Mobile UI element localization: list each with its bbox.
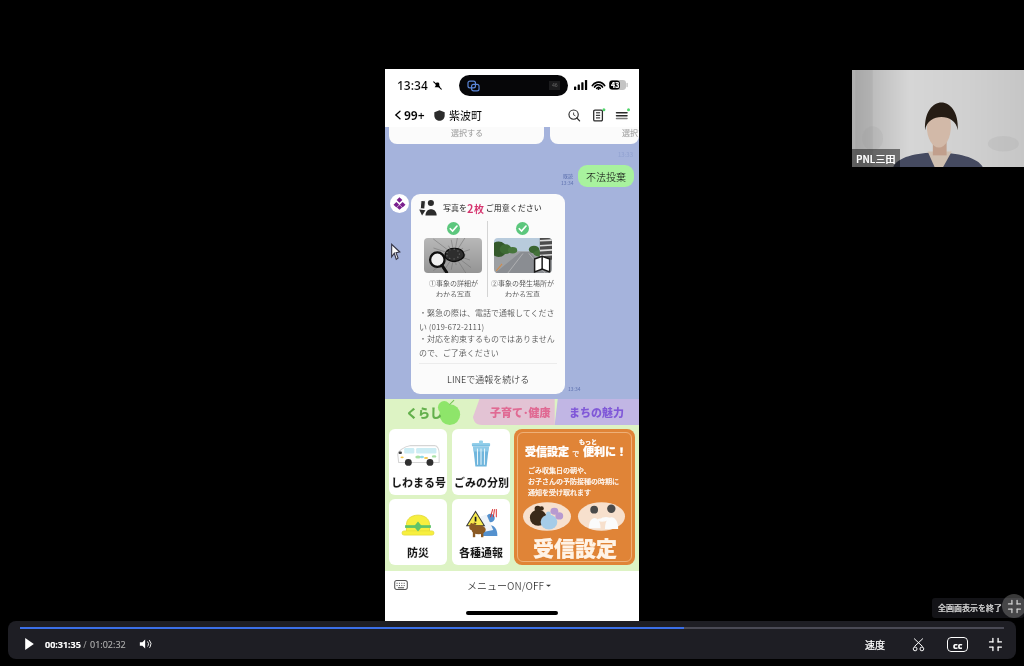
staticText: ごみの分別 <box>454 474 509 490</box>
button[interactable]: 防災 <box>389 499 447 565</box>
staticText: 既読 <box>563 172 574 179</box>
staticText: 46 <box>552 82 558 89</box>
staticText: 写真を <box>443 202 467 214</box>
staticText: 便利に！ <box>583 443 627 459</box>
staticText: 速度 <box>865 637 885 651</box>
staticText: まちの魅力 <box>569 404 624 420</box>
staticText: ・緊急の際は、電話で通報してください (019-672-2111) <box>419 307 557 333</box>
button[interactable]: Captions <box>947 637 968 652</box>
staticText: で <box>569 448 583 458</box>
staticText: 不法投棄 <box>586 169 626 183</box>
staticText: 13:34 <box>568 385 581 392</box>
button[interactable]: Back <box>393 107 425 123</box>
staticText: 99+ <box>404 107 425 123</box>
button[interactable]: ごみの分別 <box>452 429 510 495</box>
button[interactable]: 受信設定 <box>514 429 635 565</box>
staticText: 00:31:35 <box>45 638 81 650</box>
button[interactable]: Volume <box>137 635 155 653</box>
staticText: 各種通報 <box>459 544 503 560</box>
button[interactable]: 選択する <box>389 127 544 144</box>
staticText: 選択する <box>451 127 483 139</box>
button[interactable]: メニューON/OFF <box>467 578 551 592</box>
button[interactable]: Play <box>20 635 38 653</box>
button[interactable]: Notes <box>591 108 606 123</box>
staticText: 紫波町 <box>449 107 482 123</box>
staticText: cc <box>953 639 963 651</box>
staticText: メニューON/OFF <box>467 578 544 592</box>
staticText: ・対応を約束するものではありませんので、ご了承ください <box>419 333 557 359</box>
button[interactable]: 不法投棄 <box>578 165 634 187</box>
staticText: 選択する <box>622 127 639 139</box>
staticText: ごみ収集日の朝や、 お子さんの予防接種の時期に 通知を受け取れます <box>528 465 619 497</box>
staticText: ①事象の詳細が わかる写真 <box>429 278 478 297</box>
staticText: 枚 <box>474 201 484 215</box>
button[interactable]: Clip <box>909 635 927 653</box>
button[interactable]: LINEで通報を続ける <box>419 364 557 394</box>
staticText: 受信設定 <box>525 443 569 459</box>
staticText: 2 <box>467 200 474 216</box>
button[interactable]: まちの魅力 <box>559 399 639 425</box>
staticText: PNL三田 <box>856 151 896 165</box>
staticText: 子育て･健康 <box>490 404 551 420</box>
button[interactable]: 選択する <box>550 127 639 144</box>
button[interactable]: Exit full screen <box>986 635 1004 653</box>
button[interactable]: Menu <box>615 108 630 123</box>
button[interactable]: 速度 <box>861 637 889 651</box>
button[interactable]: くらし <box>385 399 481 425</box>
staticText: LINEで通報を続ける <box>447 373 530 386</box>
button[interactable]: 子育て･健康 <box>481 399 559 425</box>
staticText: 防災 <box>407 544 429 560</box>
button[interactable]: Exit full screen <box>1002 594 1024 618</box>
staticText: ご用意ください <box>484 202 542 214</box>
staticText: / <box>81 638 90 650</box>
staticText: くらし <box>406 404 443 421</box>
staticText: 13:33 <box>618 150 633 159</box>
staticText: 43 <box>611 80 620 90</box>
staticText: ②事象の発生場所が わかる写真 <box>491 278 554 297</box>
button[interactable]: Search <box>567 108 582 123</box>
staticText: 全画面表示を終了 <box>938 602 1002 614</box>
staticText: しわまる号 <box>391 474 446 490</box>
button[interactable]: しわまる号 <box>389 429 447 495</box>
staticText: もっと <box>579 437 598 446</box>
button[interactable]: 各種通報 <box>452 499 510 565</box>
staticText: 受信設定 <box>533 532 617 559</box>
staticText: 13:34 <box>397 77 428 93</box>
staticText: 13:34 <box>561 179 574 186</box>
button[interactable]: Keyboard <box>394 578 408 592</box>
staticText: 01:02:32 <box>90 638 126 650</box>
